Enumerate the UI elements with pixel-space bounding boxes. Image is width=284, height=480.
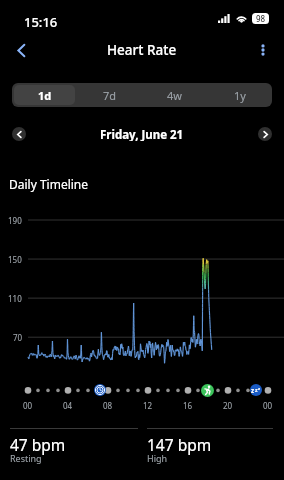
- staticText: 47 bpm: [10, 434, 66, 455]
- staticText: 15:16: [24, 13, 58, 31]
- staticText: 1d: [38, 88, 52, 103]
- staticText: 00: [23, 400, 33, 411]
- staticText: 98: [256, 13, 266, 24]
- button[interactable]: 47 bpm: [10, 428, 138, 467]
- staticText: 08: [103, 400, 113, 411]
- button[interactable]: Sleep: [250, 384, 262, 396]
- button[interactable]: Back: [4, 33, 38, 67]
- staticText: 150: [8, 254, 22, 265]
- staticText: Friday, June 21: [100, 127, 184, 141]
- staticText: 1y: [234, 88, 246, 103]
- staticText: z: [258, 386, 261, 392]
- staticText: z: [255, 386, 258, 393]
- staticText: 00: [263, 400, 273, 411]
- staticText: 20: [223, 400, 233, 411]
- staticText: 7d: [103, 88, 117, 103]
- staticText: 12: [143, 400, 153, 411]
- button[interactable]: 147 bpm: [147, 428, 273, 467]
- button[interactable]: Previous day: [12, 127, 26, 141]
- staticText: Heart Rate: [107, 41, 177, 59]
- staticText: 147 bpm: [147, 434, 212, 455]
- button[interactable]: 1d: [14, 85, 75, 105]
- button[interactable]: Activity: [94, 384, 106, 396]
- staticText: 190: [8, 215, 22, 226]
- button[interactable]: 7d: [79, 85, 140, 105]
- staticText: z: [251, 386, 255, 395]
- button[interactable]: Workout: [201, 384, 214, 397]
- button[interactable]: 1y: [209, 85, 270, 105]
- staticText: 4w: [167, 88, 182, 103]
- staticText: Daily Timeline: [9, 176, 89, 192]
- button[interactable]: Next day: [258, 127, 272, 141]
- staticText: Resting: [10, 452, 42, 464]
- staticText: 70: [13, 332, 23, 343]
- button[interactable]: More options: [246, 33, 280, 67]
- staticText: 110: [8, 293, 22, 304]
- staticText: 16: [183, 400, 193, 411]
- staticText: High: [147, 452, 168, 464]
- staticText: 04: [63, 400, 73, 411]
- button[interactable]: 4w: [144, 85, 205, 105]
